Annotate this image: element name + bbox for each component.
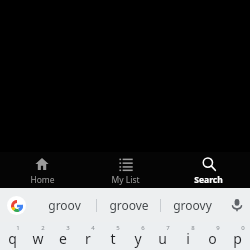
staticText: 8 (191, 224, 195, 232)
button[interactable]: 4 (75, 222, 100, 250)
staticText: i (186, 229, 190, 248)
staticText: Home (30, 174, 55, 186)
staticText: groov (48, 197, 81, 213)
button[interactable]: 7 (150, 222, 175, 250)
staticText: 1 (16, 224, 20, 232)
staticText: p (233, 229, 242, 248)
staticText: 5 (116, 224, 120, 232)
staticText: My List (111, 174, 140, 186)
staticText: 7 (166, 224, 170, 232)
button[interactable]: Google search (7, 196, 26, 215)
staticText: 2 (41, 224, 45, 232)
button[interactable]: Voice input (224, 188, 250, 222)
staticText: 3 (66, 224, 70, 232)
button[interactable]: 5 (100, 222, 125, 250)
staticText: q (8, 229, 17, 248)
button[interactable]: groov (32, 188, 96, 222)
staticText: Search (194, 174, 223, 186)
button[interactable]: Search (167, 152, 250, 188)
button[interactable]: 3 (50, 222, 75, 250)
button[interactable]: 8 (175, 222, 200, 250)
button[interactable]: groove (97, 188, 160, 222)
staticText: w (32, 229, 44, 248)
staticText: 9 (216, 224, 220, 232)
button[interactable]: 6 (125, 222, 150, 250)
staticText: groovy (173, 197, 212, 213)
button[interactable]: 0 (225, 222, 250, 250)
button[interactable]: groovy (161, 188, 224, 222)
staticText: y (134, 229, 142, 248)
staticText: t (110, 229, 116, 248)
button[interactable]: 1 (0, 222, 25, 250)
button[interactable]: 9 (200, 222, 225, 250)
staticText: u (158, 229, 167, 248)
staticText: r (85, 229, 91, 248)
button[interactable]: 2 (25, 222, 50, 250)
staticText: 0 (241, 224, 245, 232)
staticText: e (59, 229, 67, 248)
button[interactable]: My List (84, 152, 167, 188)
staticText: o (208, 229, 217, 248)
staticText: groove (109, 197, 149, 213)
button[interactable]: Home (0, 152, 84, 188)
staticText: 4 (91, 224, 95, 232)
staticText: 6 (141, 224, 145, 232)
